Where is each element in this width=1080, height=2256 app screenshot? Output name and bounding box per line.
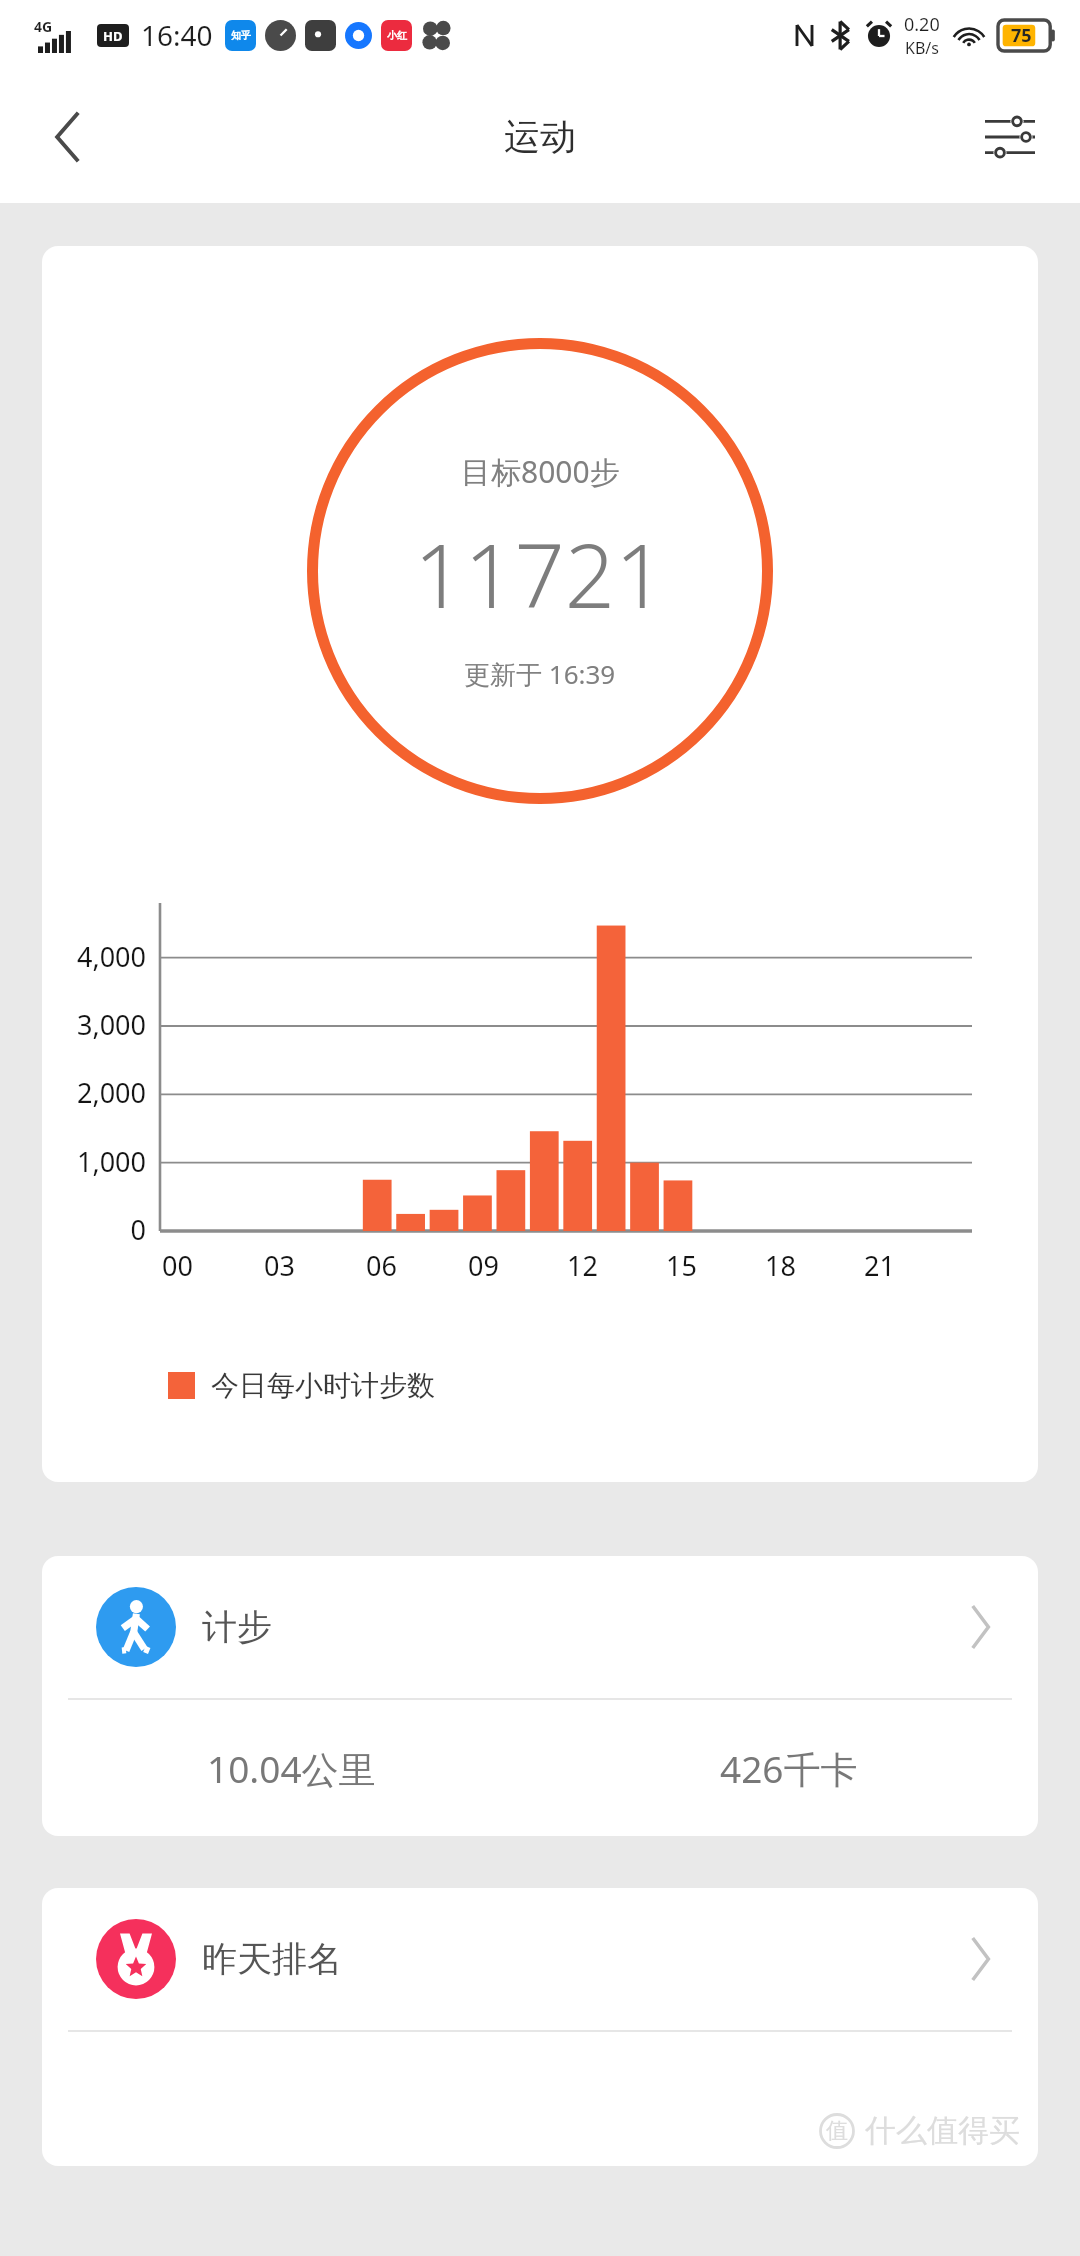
staticText: 昨天排名 xyxy=(202,1937,342,1981)
button[interactable]: 计步 xyxy=(42,1556,1038,1698)
staticText: 75 xyxy=(1011,23,1032,48)
staticText: 00 xyxy=(162,1247,193,1284)
staticText: 15 xyxy=(666,1247,697,1284)
staticText: 4,000 xyxy=(76,938,146,975)
staticText: 目标8000步 xyxy=(461,451,620,492)
staticText: 小红 xyxy=(387,29,407,42)
staticText: 12 xyxy=(567,1247,598,1284)
staticText: 16:40 xyxy=(141,16,213,54)
staticText: 426千卡 xyxy=(720,1743,858,1794)
button[interactable]: 昨天排名 xyxy=(42,1888,1038,2030)
staticText: 2,000 xyxy=(76,1074,146,1111)
staticText: 18 xyxy=(765,1247,796,1284)
staticText: 4G xyxy=(34,17,53,36)
staticText: 0 xyxy=(130,1211,146,1248)
button[interactable]: Back xyxy=(20,89,116,185)
other: Open xyxy=(966,1602,994,1652)
staticText: 03 xyxy=(264,1247,295,1284)
staticText: 运动 xyxy=(504,114,576,159)
staticText: 09 xyxy=(468,1247,499,1284)
staticText: 0.20 xyxy=(904,12,940,37)
staticText: 计步 xyxy=(202,1605,272,1649)
staticText: HD xyxy=(103,27,123,45)
staticText: 值 xyxy=(826,2117,848,2145)
staticText: 1,000 xyxy=(76,1143,146,1180)
other: Open xyxy=(966,1934,994,1984)
staticText: 10.04公里 xyxy=(207,1743,376,1794)
staticText: 今日每小时计步数 xyxy=(211,1368,435,1403)
staticText: 21 xyxy=(864,1247,895,1284)
staticText: 更新于 16:39 xyxy=(464,656,616,692)
staticText: 3,000 xyxy=(76,1006,146,1043)
button[interactable]: Settings xyxy=(962,89,1058,185)
staticText: 知乎 xyxy=(231,29,251,42)
staticText: 11721 xyxy=(414,514,666,634)
staticText: KB/s xyxy=(905,37,939,59)
staticText: 06 xyxy=(366,1247,397,1284)
staticText: 什么值得买 xyxy=(865,2111,1020,2150)
